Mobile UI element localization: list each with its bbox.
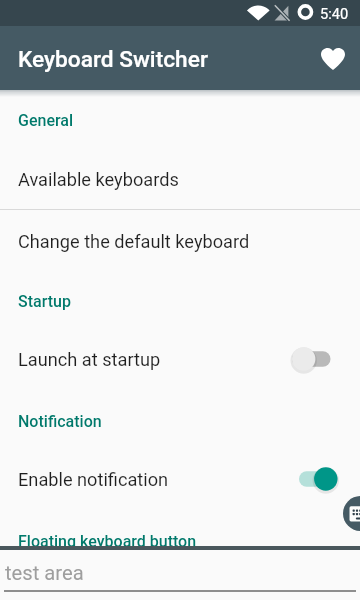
staticText: Change the default keyboard <box>18 231 250 252</box>
staticText: Enable notification <box>18 469 169 490</box>
button[interactable]: Favorite <box>313 39 353 79</box>
staticText: test area <box>5 561 84 585</box>
button[interactable]: Launch at startup <box>0 335 360 395</box>
staticText: Available keyboards <box>18 169 179 190</box>
staticText: Keyboard Switcher <box>18 46 208 73</box>
staticText: General <box>18 111 74 130</box>
button[interactable]: Available keyboards <box>0 155 360 215</box>
button[interactable]: Floating keyboard <box>343 496 360 531</box>
staticText: Floating keyboard button <box>18 532 197 551</box>
staticText: Startup <box>18 292 71 311</box>
button[interactable]: Change the default keyboard <box>0 215 360 275</box>
staticText: 5:40 <box>320 5 349 22</box>
staticText: Notification <box>18 412 102 431</box>
staticText: Launch at startup <box>18 349 161 370</box>
button[interactable]: Enable notification <box>0 455 360 515</box>
